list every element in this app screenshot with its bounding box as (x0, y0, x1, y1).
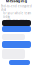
staticText: with zero setup needed (5, 19, 27, 26)
staticText: Secure Messaging (5, 0, 27, 3)
staticText: End-to-end encrypted chat (1, 4, 32, 11)
staticText: for your whole team today (2, 11, 30, 19)
